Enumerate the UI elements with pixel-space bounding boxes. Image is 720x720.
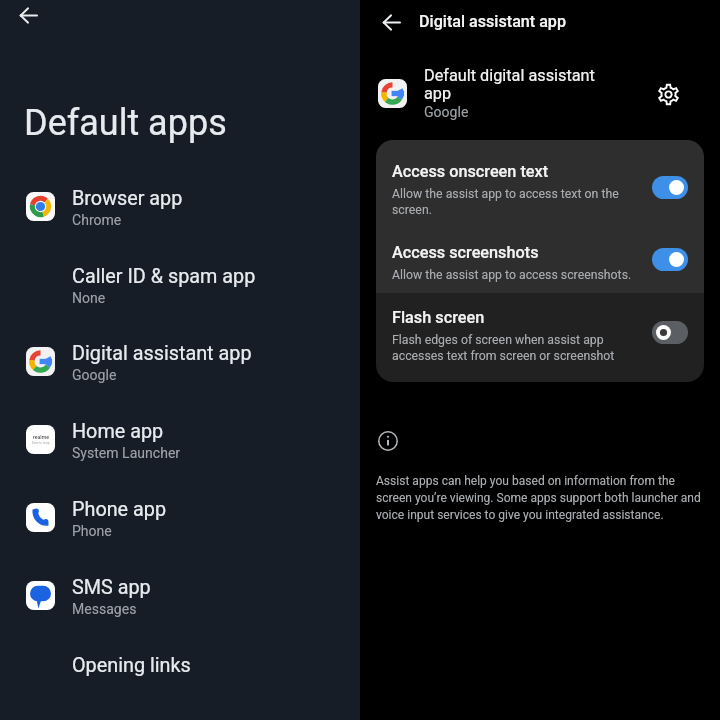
staticText: Flash screen [392,307,485,327]
button[interactable]: Flash screen [376,293,704,382]
staticText: SMS app [72,575,151,599]
staticText: Access screenshots [392,242,539,262]
button[interactable]: Phone app [0,477,360,555]
button[interactable]: Back [371,2,411,42]
staticText: Chrome [72,211,122,229]
button[interactable]: On [652,248,688,271]
button[interactable]: Opening links [0,633,360,711]
staticText: Phone app [72,497,167,521]
button[interactable]: realme [0,399,360,477]
staticText: Phone [72,522,112,540]
staticText: Digital assistant app [419,10,566,32]
staticText: Dare to Leap [32,440,50,445]
button[interactable]: Default digital assistant app [360,62,720,126]
staticText: Caller ID & spam app [72,264,256,288]
staticText: Google [424,103,469,121]
button[interactable]: Access screenshots [376,221,704,293]
button[interactable]: Settings [648,74,688,114]
staticText: Flash edges of screen when assist app ac… [392,331,624,363]
button[interactable]: On [652,176,688,199]
staticText: Allow the assist app to access screensho… [392,266,638,282]
staticText: None [72,289,106,307]
staticText: Default apps [24,100,227,144]
staticText: System Launcher [72,444,181,462]
staticText: Access onscreen text [392,161,549,181]
staticText: Home app [72,419,164,443]
button[interactable]: Caller ID & spam app [0,244,360,322]
staticText: Allow the assist app to access text on t… [392,185,620,217]
button[interactable]: Browser app [0,166,360,244]
button[interactable]: Back [8,0,48,35]
staticText: Digital assistant app [72,341,252,365]
staticText: Messages [72,600,137,618]
staticText: Browser app [72,186,183,210]
staticText: Default digital assistant app [424,67,600,103]
button[interactable]: Digital assistant app [0,321,360,399]
staticText: realme [33,434,49,440]
staticText: Assist apps can help you based on inform… [376,472,704,523]
staticText: Opening links [72,653,191,677]
button[interactable]: SMS app [0,555,360,633]
button[interactable]: Off [652,321,688,344]
staticText: Google [72,366,117,384]
button[interactable]: Access onscreen text [376,140,704,221]
